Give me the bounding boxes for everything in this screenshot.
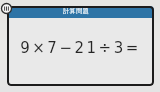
button[interactable]: App icon [1, 3, 12, 14]
staticText: 9×7−21÷3= [20, 39, 141, 56]
staticText: 計算問題 [63, 7, 90, 15]
button[interactable]: 計算問題 [7, 6, 154, 18]
